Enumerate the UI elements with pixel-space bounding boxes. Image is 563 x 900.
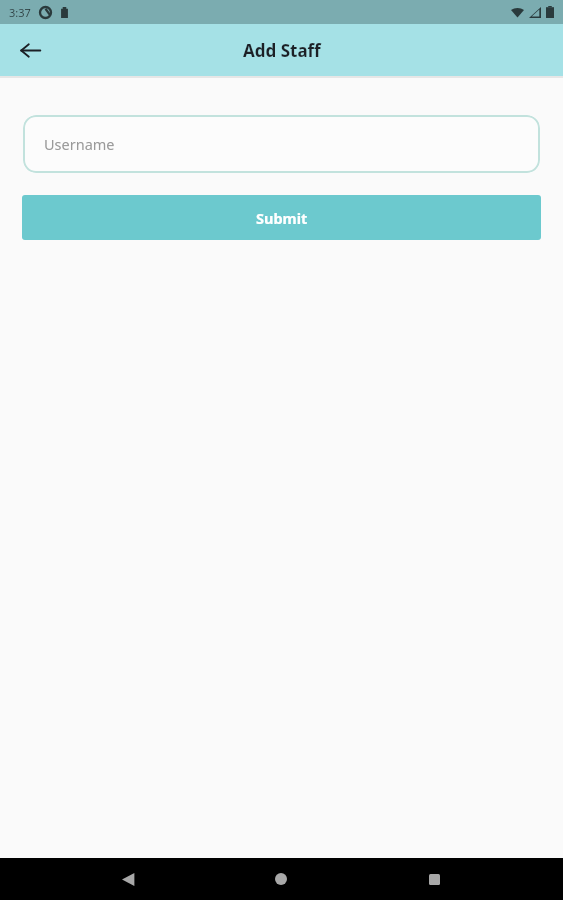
staticText: Add Staff bbox=[243, 39, 321, 62]
staticText: Submit bbox=[256, 208, 308, 228]
button[interactable]: Back bbox=[8, 28, 52, 72]
button[interactable]: Recent apps bbox=[410, 858, 458, 900]
staticText: Username bbox=[44, 134, 115, 154]
button[interactable]: Submit bbox=[22, 195, 541, 240]
button[interactable]: Username bbox=[23, 115, 540, 173]
button[interactable]: Home bbox=[257, 858, 305, 900]
staticText: 3:37 bbox=[9, 5, 31, 20]
button[interactable]: Back bbox=[104, 858, 152, 900]
